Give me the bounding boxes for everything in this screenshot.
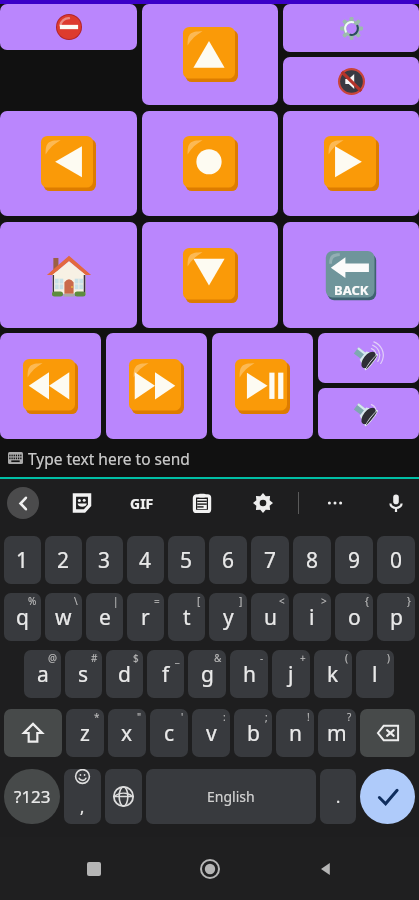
button[interactable]: OK	[142, 111, 278, 216]
staticText: x	[121, 719, 133, 748]
button[interactable]: 6	[209, 536, 247, 584]
staticText: 6	[222, 546, 235, 575]
button[interactable]: Fast forward	[106, 333, 207, 439]
button[interactable]: x	[108, 709, 146, 757]
button[interactable]: GIF	[124, 485, 160, 521]
button[interactable]: 0	[377, 536, 415, 584]
staticText: :	[223, 710, 226, 724]
button[interactable]: Back	[283, 222, 419, 328]
staticText: ,	[80, 796, 85, 818]
button[interactable]: i	[293, 593, 331, 641]
staticText: e	[99, 603, 111, 632]
button[interactable]: 4	[127, 536, 164, 584]
button[interactable]: Back	[7, 487, 39, 519]
staticText: \	[74, 594, 78, 608]
staticText: o	[348, 603, 361, 632]
button[interactable]: Up	[142, 4, 278, 105]
button[interactable]: v	[192, 709, 230, 757]
button[interactable]: Type text here to send	[8, 439, 419, 477]
button[interactable]: g	[188, 650, 226, 698]
button[interactable]: k	[314, 650, 352, 698]
button[interactable]: Clipboard	[185, 486, 219, 520]
button[interactable]: ?123	[4, 769, 60, 824]
button[interactable]: j	[272, 650, 310, 698]
button[interactable]: Left	[0, 111, 137, 216]
staticText: .	[336, 786, 341, 808]
button[interactable]: More options	[318, 486, 352, 520]
button[interactable]: 5	[168, 536, 205, 584]
staticText: ?123	[14, 785, 51, 808]
button[interactable]: 8	[293, 536, 331, 584]
staticText: 2	[57, 546, 70, 575]
button[interactable]: w	[45, 593, 82, 641]
button[interactable]: p	[377, 593, 415, 641]
staticText: c	[164, 719, 175, 748]
staticText: 8	[306, 546, 319, 575]
button[interactable]: Stickers	[65, 486, 99, 520]
button[interactable]: d	[106, 650, 143, 698]
button[interactable]: r	[127, 593, 164, 641]
button[interactable]: f	[147, 650, 184, 698]
button[interactable]: Enter	[360, 769, 415, 824]
button[interactable]: h	[230, 650, 268, 698]
button[interactable]: z	[66, 709, 104, 757]
button[interactable]: o	[335, 593, 373, 641]
button[interactable]: 7	[251, 536, 289, 584]
button[interactable]: Home	[188, 847, 232, 891]
button[interactable]: Space	[146, 769, 316, 824]
button[interactable]: Shift	[4, 709, 62, 757]
button[interactable]: Volume down	[318, 388, 419, 439]
staticText: *	[94, 710, 100, 724]
button[interactable]: y	[209, 593, 247, 641]
staticText: )	[387, 651, 390, 665]
staticText: 7	[264, 546, 277, 575]
button[interactable]: m	[318, 709, 356, 757]
staticText: k	[327, 660, 339, 689]
button[interactable]: b	[234, 709, 272, 757]
button[interactable]: q	[4, 593, 41, 641]
staticText: z	[80, 719, 90, 748]
staticText: p	[390, 603, 403, 632]
button[interactable]: 9	[335, 536, 373, 584]
button[interactable]: Mute	[283, 57, 419, 105]
staticText: b	[247, 719, 260, 748]
button[interactable]: a	[24, 650, 61, 698]
button[interactable]: Volume up	[318, 333, 419, 383]
button[interactable]: Settings	[283, 4, 419, 52]
button[interactable]: Voice input	[379, 486, 413, 520]
staticText: <	[279, 594, 285, 608]
button[interactable]: 1	[4, 536, 41, 584]
staticText: (	[345, 651, 348, 665]
button[interactable]: 3	[86, 536, 123, 584]
button[interactable]: Settings	[246, 486, 280, 520]
button[interactable]: n	[276, 709, 314, 757]
button[interactable]: l	[356, 650, 394, 698]
staticText: a	[37, 660, 49, 689]
button[interactable]: Period	[320, 769, 356, 824]
button[interactable]: Right	[283, 111, 419, 216]
button[interactable]: s	[65, 650, 102, 698]
button[interactable]: Language	[105, 769, 142, 824]
button[interactable]: 2	[45, 536, 82, 584]
button[interactable]: Back	[303, 847, 347, 891]
staticText: r	[141, 603, 150, 632]
staticText: %	[28, 594, 37, 608]
button[interactable]: u	[251, 593, 289, 641]
button[interactable]: Power	[0, 4, 137, 50]
staticText: l	[372, 660, 378, 689]
staticText: j	[288, 660, 294, 689]
staticText: s	[78, 660, 89, 689]
button[interactable]: Emoji	[64, 769, 101, 824]
button[interactable]: Play pause	[212, 333, 313, 439]
button[interactable]: Recents	[72, 847, 116, 891]
button[interactable]: Backspace	[360, 709, 415, 757]
button[interactable]: c	[150, 709, 188, 757]
button[interactable]: e	[86, 593, 123, 641]
button[interactable]: t	[168, 593, 205, 641]
button[interactable]: Rewind	[0, 333, 101, 439]
staticText: f	[162, 660, 170, 689]
button[interactable]: Home	[0, 222, 137, 328]
staticText: 0	[390, 546, 403, 575]
button[interactable]: Down	[142, 222, 278, 328]
staticText: "	[137, 710, 142, 724]
